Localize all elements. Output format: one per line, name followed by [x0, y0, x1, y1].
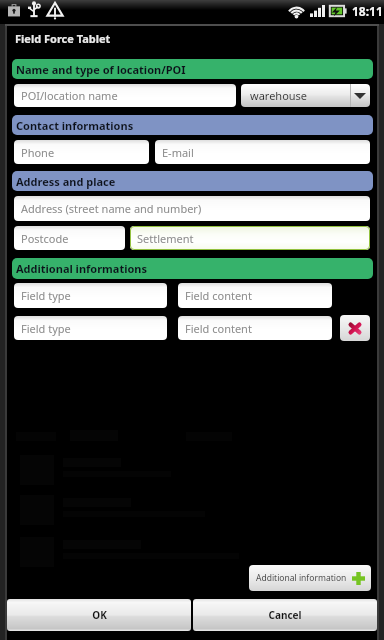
- button[interactable]: E-mail: [155, 140, 370, 164]
- button[interactable]: Name and type of location/POI: [12, 59, 373, 79]
- button[interactable]: Field type: [14, 283, 167, 308]
- button[interactable]: Settlement: [130, 226, 370, 250]
- staticText: POI/location name: [21, 88, 118, 103]
- staticText: Additional informations: [16, 261, 148, 276]
- button[interactable]: Address and place: [12, 171, 373, 191]
- button[interactable]: Postcode: [14, 226, 125, 250]
- staticText: Field type: [21, 321, 71, 336]
- button[interactable]: Cancel: [193, 599, 377, 631]
- staticText: Field type: [21, 288, 71, 303]
- staticText: Field Force Tablet: [15, 31, 111, 46]
- button[interactable]: Phone: [14, 140, 149, 164]
- staticText: Address and place: [16, 174, 116, 189]
- staticText: Settlement: [137, 231, 194, 246]
- staticText: Phone: [21, 145, 55, 160]
- button[interactable]: Additional informations: [12, 258, 373, 279]
- button[interactable]: Field content: [178, 316, 332, 340]
- button[interactable]: Contact informations: [12, 115, 373, 135]
- staticText: Cancel: [268, 608, 302, 622]
- staticText: Field content: [185, 321, 252, 336]
- staticText: Name and type of location/POI: [16, 62, 186, 77]
- staticText: Contact informations: [16, 118, 134, 133]
- staticText: Address (street name and number): [21, 201, 202, 216]
- staticText: Additional information: [256, 572, 347, 584]
- staticText: warehouse: [250, 88, 308, 103]
- staticText: E-mail: [162, 145, 194, 160]
- button[interactable]: Field type: [14, 316, 167, 340]
- button[interactable]: POI/location name: [14, 84, 236, 107]
- button[interactable]: Delete row: [340, 315, 370, 341]
- button[interactable]: Field content: [178, 283, 332, 308]
- staticText: Field content: [185, 288, 252, 303]
- button[interactable]: warehouse: [241, 84, 370, 107]
- button[interactable]: Address (street name and number): [14, 196, 370, 221]
- button[interactable]: OK: [7, 599, 191, 631]
- button[interactable]: Additional information: [249, 565, 371, 591]
- staticText: 18:11: [352, 3, 383, 19]
- staticText: OK: [92, 608, 107, 622]
- staticText: Postcode: [21, 231, 69, 246]
